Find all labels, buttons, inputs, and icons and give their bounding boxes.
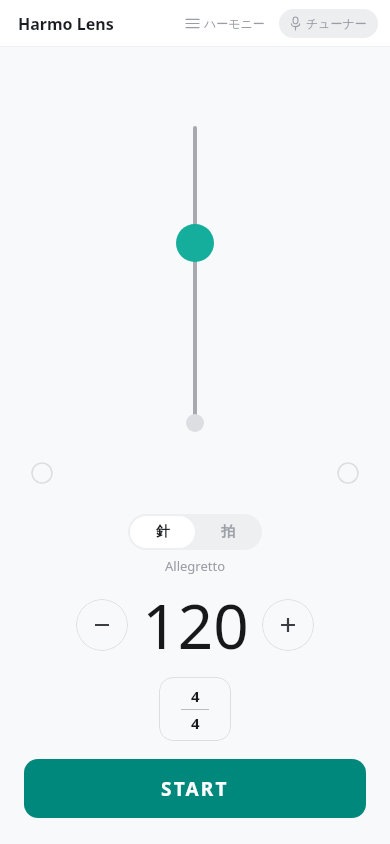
button[interactable]: 針 [130, 516, 195, 548]
button[interactable]: Decrease tempo [76, 599, 128, 651]
staticText: チューナー [306, 16, 367, 31]
button[interactable]: チューナー [279, 9, 378, 38]
button[interactable]: Left beat indicator [31, 462, 53, 484]
button[interactable]: 拍 [195, 516, 260, 548]
staticText: 拍 [221, 523, 235, 541]
button[interactable]: START [24, 759, 366, 818]
staticText: 針 [156, 523, 170, 541]
staticText: ハーモニー [204, 16, 265, 31]
staticText: Harmo Lens [18, 13, 114, 35]
staticText: 4 [191, 686, 200, 706]
button[interactable]: 4 [159, 677, 231, 741]
button[interactable]: ハーモニー [178, 10, 273, 37]
staticText: START [161, 776, 229, 802]
button[interactable]: Right beat indicator [337, 462, 359, 484]
button[interactable]: Increase tempo [262, 599, 314, 651]
staticText: Allegretto [165, 557, 226, 575]
staticText: 4 [191, 713, 200, 733]
staticText: 120 [142, 583, 249, 667]
